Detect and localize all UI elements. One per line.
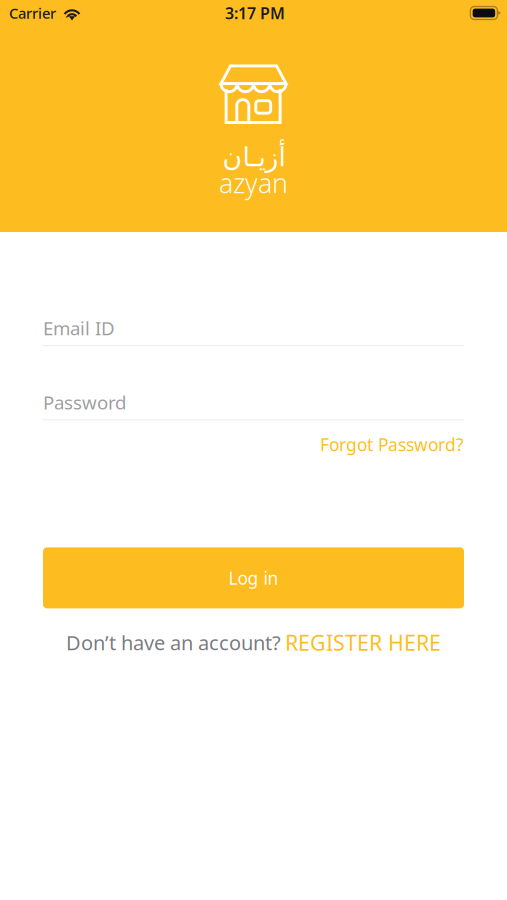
staticText: azyan [219, 165, 288, 201]
staticText: Forgot Password? [320, 433, 464, 456]
staticText: Email ID [43, 316, 115, 340]
button[interactable]: Email ID [43, 318, 464, 346]
staticText: Password [43, 390, 126, 415]
staticText: REGISTER HERE [285, 628, 441, 656]
staticText: أزيـان [222, 142, 285, 172]
staticText: 3:17 PM [225, 2, 285, 24]
button[interactable]: Log in [43, 547, 464, 608]
staticText: Carrier [9, 3, 56, 23]
staticText: Don’t have an account? [66, 629, 281, 656]
button[interactable]: Password [43, 392, 464, 420]
button[interactable]: REGISTER HERE [285, 625, 441, 659]
staticText: Log in [228, 566, 278, 589]
button[interactable]: Forgot Password? [320, 432, 464, 456]
